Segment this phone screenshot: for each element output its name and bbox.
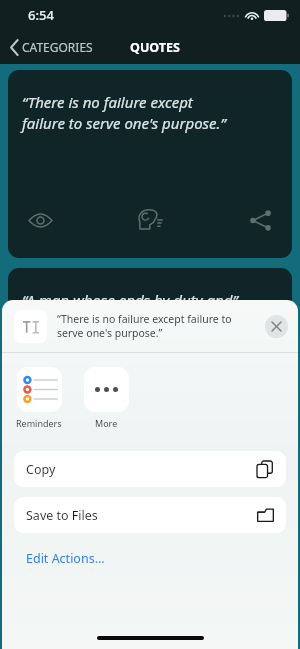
button[interactable]: Save to Files	[14, 497, 286, 533]
staticText: QUOTES	[130, 39, 180, 56]
staticText: Save to Files	[26, 507, 98, 524]
staticText: CATEGORIES	[22, 39, 93, 55]
staticText: Copy	[26, 461, 56, 478]
button[interactable]: More	[82, 367, 131, 429]
button[interactable]: “A man whose ends by duty and”	[8, 268, 292, 398]
staticText: “A man whose ends by duty and”	[22, 290, 238, 310]
button[interactable]: CATEGORIES	[6, 34, 97, 60]
staticText: 6:54	[28, 6, 54, 24]
button[interactable]: Speak	[132, 202, 168, 238]
staticText: Edit Actions...	[26, 550, 105, 567]
staticText: More	[95, 417, 118, 429]
button[interactable]: “There is no failure except failure to s…	[8, 70, 292, 258]
staticText: “There is no failure except failure to s…	[57, 312, 259, 340]
button[interactable]: View	[22, 202, 58, 238]
button[interactable]: Share	[242, 202, 278, 238]
button[interactable]: Reminders	[14, 367, 64, 429]
button[interactable]: Copy	[14, 451, 286, 487]
staticText: “There is no failure except failure to s…	[22, 92, 226, 134]
button[interactable]: Edit Actions...	[14, 546, 117, 571]
staticText: Reminders	[16, 417, 62, 429]
button[interactable]: Close	[265, 315, 288, 338]
